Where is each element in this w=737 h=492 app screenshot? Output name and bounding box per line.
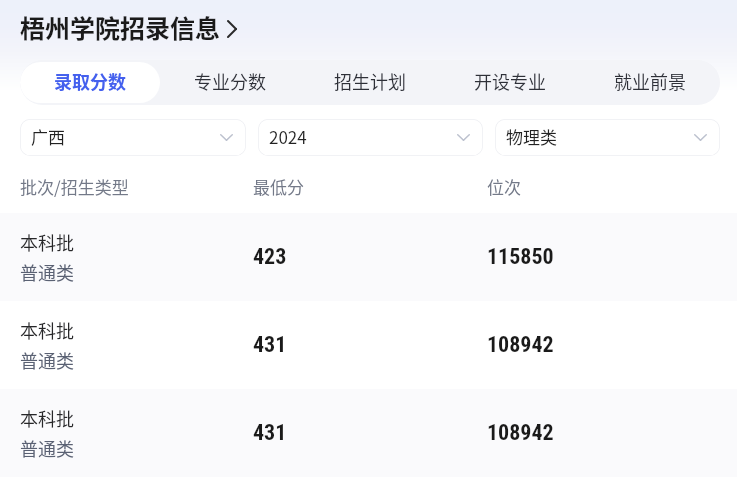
button[interactable]: 广西: [20, 119, 246, 156]
button[interactable]: 招生计划: [300, 62, 440, 103]
staticText: 本科批: [20, 317, 74, 343]
staticText: 录取分数: [54, 68, 126, 94]
staticText: 423: [253, 244, 287, 270]
staticText: 就业前景: [614, 68, 686, 94]
staticText: 108942: [487, 332, 554, 358]
button[interactable]: 录取分数: [20, 62, 160, 103]
staticText: 普通类: [20, 347, 74, 373]
staticText: 431: [253, 420, 287, 446]
staticText: 431: [253, 332, 287, 358]
staticText: 本科批: [20, 229, 74, 255]
button[interactable]: 物理类: [495, 119, 720, 156]
staticText: 梧州学院招录信息: [20, 9, 221, 45]
button[interactable]: 梧州学院招录信息: [20, 9, 237, 45]
button[interactable]: 就业前景: [580, 62, 720, 103]
staticText: 最低分: [253, 174, 487, 199]
staticText: 普通类: [20, 435, 74, 461]
button[interactable]: 本科批: [0, 301, 737, 389]
button[interactable]: 2024: [258, 119, 483, 156]
staticText: 物理类: [506, 124, 557, 149]
staticText: 115850: [487, 244, 554, 270]
button[interactable]: 开设专业: [440, 62, 580, 103]
button[interactable]: 本科批: [0, 213, 737, 301]
staticText: 招生计划: [334, 68, 406, 94]
staticText: 开设专业: [474, 68, 546, 94]
staticText: 108942: [487, 420, 554, 446]
staticText: 批次/招生类型: [20, 174, 253, 199]
staticText: 广西: [31, 124, 65, 149]
staticText: 位次: [487, 174, 521, 199]
staticText: 专业分数: [194, 68, 266, 94]
staticText: 2024: [269, 124, 307, 149]
button[interactable]: 本科批: [0, 389, 737, 477]
other: More: [227, 20, 237, 38]
staticText: 本科批: [20, 405, 74, 431]
button[interactable]: 专业分数: [160, 62, 300, 103]
staticText: 普通类: [20, 259, 74, 285]
